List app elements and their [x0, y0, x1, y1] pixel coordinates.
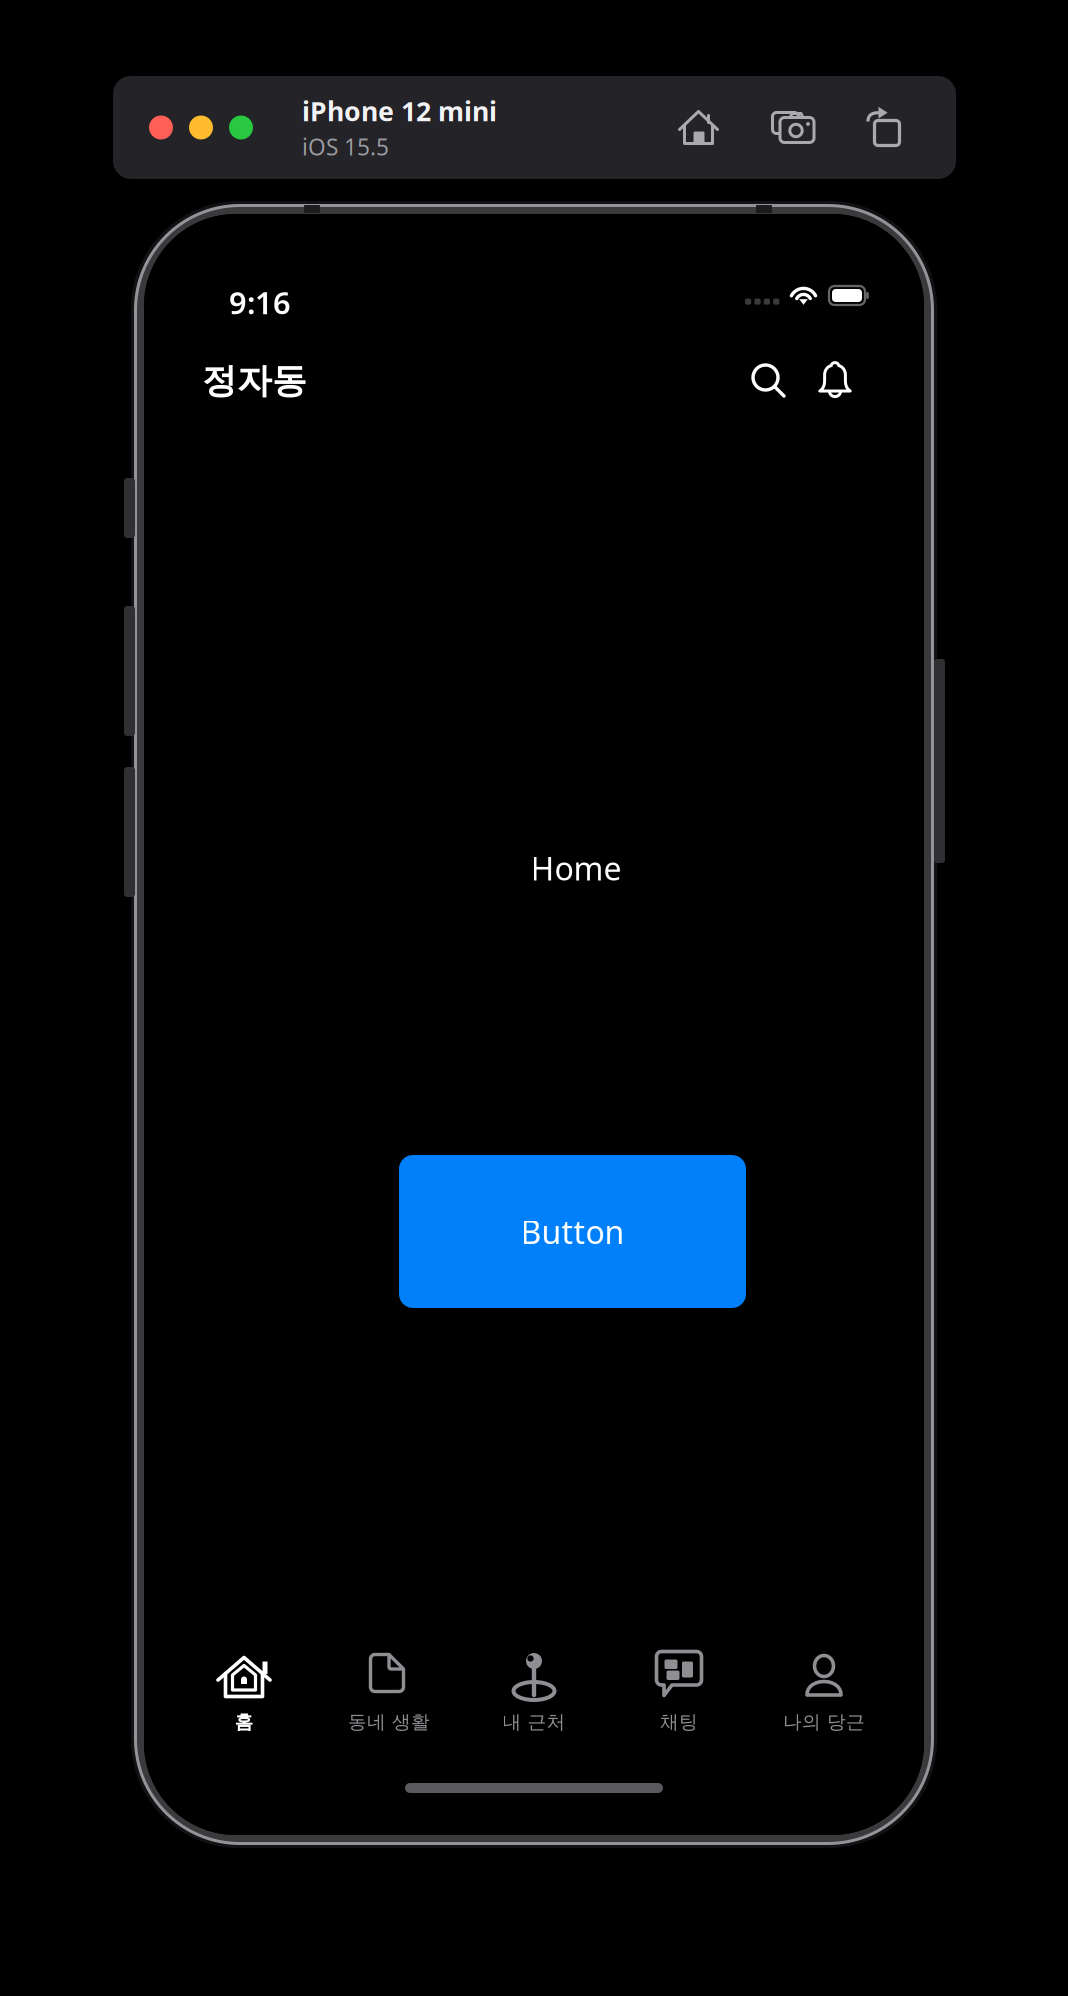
staticText: 9:16 — [229, 282, 291, 323]
button[interactable]: Record screen — [838, 95, 928, 159]
staticText: 동네 생활 — [348, 1710, 430, 1733]
staticText: 내 근처 — [502, 1710, 565, 1733]
staticText: 홈 — [234, 1710, 253, 1733]
staticText: iOS 15.5 — [302, 132, 389, 162]
staticText: 정자동 — [202, 360, 307, 402]
button[interactable]: 채팅 — [606, 1654, 751, 1746]
button[interactable]: Button — [399, 1155, 746, 1308]
button[interactable]: 동네 생활 — [316, 1654, 461, 1746]
button[interactable]: Notifications — [802, 348, 868, 414]
staticText: Home — [530, 847, 621, 889]
button[interactable]: 나의 당근 — [751, 1654, 896, 1746]
button[interactable]: Search — [736, 348, 802, 414]
staticText: 나의 당근 — [783, 1710, 865, 1733]
button[interactable]: 내 근처 — [461, 1654, 606, 1746]
button[interactable]: 홈 — [171, 1654, 316, 1746]
staticText: Button — [520, 1210, 624, 1253]
button[interactable]: Home — [649, 95, 748, 159]
button[interactable]: Screenshot — [748, 95, 838, 159]
staticText: iPhone 12 mini — [302, 93, 497, 129]
staticText: 채팅 — [660, 1710, 698, 1733]
